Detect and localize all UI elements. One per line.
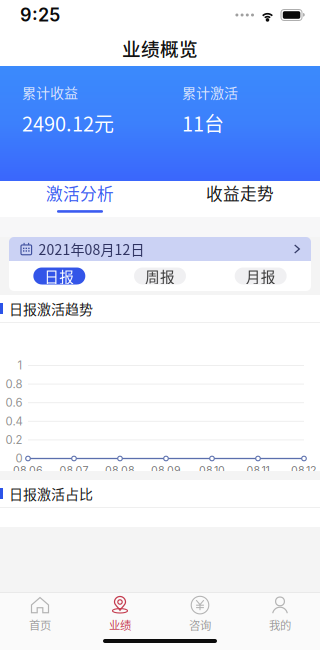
- staticText: 0.6: [5, 396, 22, 409]
- staticText: 0: [15, 452, 22, 465]
- staticText: 08.11: [246, 463, 269, 476]
- button[interactable]: 我的: [240, 593, 320, 635]
- staticText: 日报: [44, 265, 74, 287]
- staticText: 日报激活占比: [9, 483, 93, 504]
- staticText: 08.06: [13, 463, 43, 476]
- staticText: 激活分析: [46, 181, 114, 205]
- staticText: 2021年08月12日: [39, 239, 145, 259]
- staticText: 咨询: [189, 617, 211, 633]
- staticText: 2490.12元: [22, 108, 114, 137]
- staticText: 累计收益: [22, 82, 78, 102]
- staticText: 0.4: [5, 414, 22, 428]
- staticText: 08.08: [105, 463, 135, 476]
- staticText: 周报: [145, 265, 175, 287]
- staticText: 我的: [269, 617, 291, 633]
- staticText: 11台: [182, 108, 224, 137]
- staticText: 08.09: [151, 463, 181, 476]
- staticText: 业绩: [109, 617, 131, 633]
- staticText: 08.07: [59, 463, 88, 476]
- staticText: 08.12: [291, 463, 317, 476]
- staticText: 0.8: [5, 377, 22, 391]
- staticText: 收益走势: [206, 181, 274, 205]
- staticText: 月报: [246, 265, 276, 287]
- button[interactable]: 月报: [210, 267, 311, 284]
- staticText: 累计激活: [182, 82, 238, 102]
- button[interactable]: 收益走势: [160, 181, 320, 217]
- button[interactable]: 2021年08月12日: [9, 237, 311, 261]
- button[interactable]: 业绩: [80, 593, 160, 635]
- button[interactable]: 首页: [0, 593, 80, 635]
- button[interactable]: 咨询: [160, 593, 240, 635]
- staticText: 1: [17, 359, 22, 372]
- staticText: 日报激活趋势: [9, 298, 93, 319]
- button[interactable]: 日报: [9, 267, 110, 284]
- staticText: 0.2: [5, 433, 22, 447]
- staticText: 08.10: [199, 463, 225, 476]
- staticText: 首页: [29, 617, 51, 633]
- button[interactable]: 激活分析: [0, 181, 160, 217]
- staticText: 9:25: [20, 4, 60, 26]
- button[interactable]: 周报: [110, 267, 210, 284]
- staticText: 业绩概览: [122, 34, 198, 61]
